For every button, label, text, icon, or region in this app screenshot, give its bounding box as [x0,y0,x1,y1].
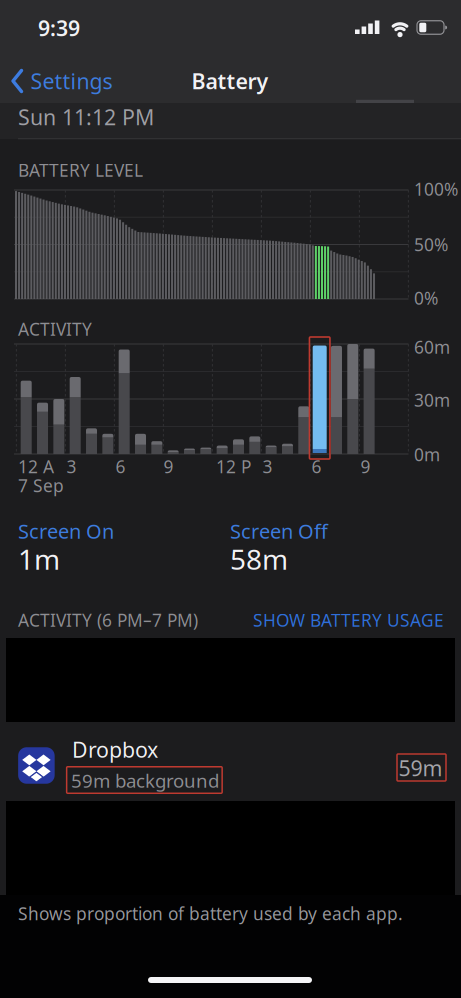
button[interactable]: SHOW BATTERY USAGE [234,608,444,632]
staticText: 100% [414,177,458,200]
staticText: 0% [414,286,438,309]
staticText: 6 [115,455,125,478]
staticText: BATTERY LEVEL [18,158,143,181]
button[interactable]: Back to Settings [11,64,112,98]
staticText: Settings [30,67,112,95]
staticText: 0m [414,443,440,466]
staticText: 30m [414,388,450,411]
staticText: 50% [414,233,448,256]
staticText: Shows proportion of battery used by each… [18,902,403,925]
staticText: ACTIVITY [18,317,92,340]
staticText: 9 [163,455,173,478]
staticText: ACTIVITY (6 PM–7 PM) [18,608,198,631]
staticText: Sun 11:12 PM [18,103,154,131]
staticText: 3 [262,455,272,478]
staticText: 9:39 [38,14,80,42]
staticText: 12 A [18,455,54,478]
staticText: Screen Off [230,518,328,544]
staticText: 60m [414,335,450,358]
staticText: 6 [311,455,321,478]
staticText: Screen On [18,518,114,544]
staticText: 1m [18,540,60,578]
button[interactable]: Dropbox [6,722,455,801]
staticText: Dropbox [72,735,158,764]
staticText: 59m [398,754,442,782]
staticText: 9 [360,455,370,478]
staticText: Battery [191,67,268,95]
staticText: 3 [66,455,76,478]
staticText: 58m [230,540,288,578]
staticText: 12 P [216,455,251,478]
staticText: 7 Sep [18,474,64,497]
staticText: 59m background [71,768,219,793]
staticText: SHOW BATTERY USAGE [253,608,444,631]
